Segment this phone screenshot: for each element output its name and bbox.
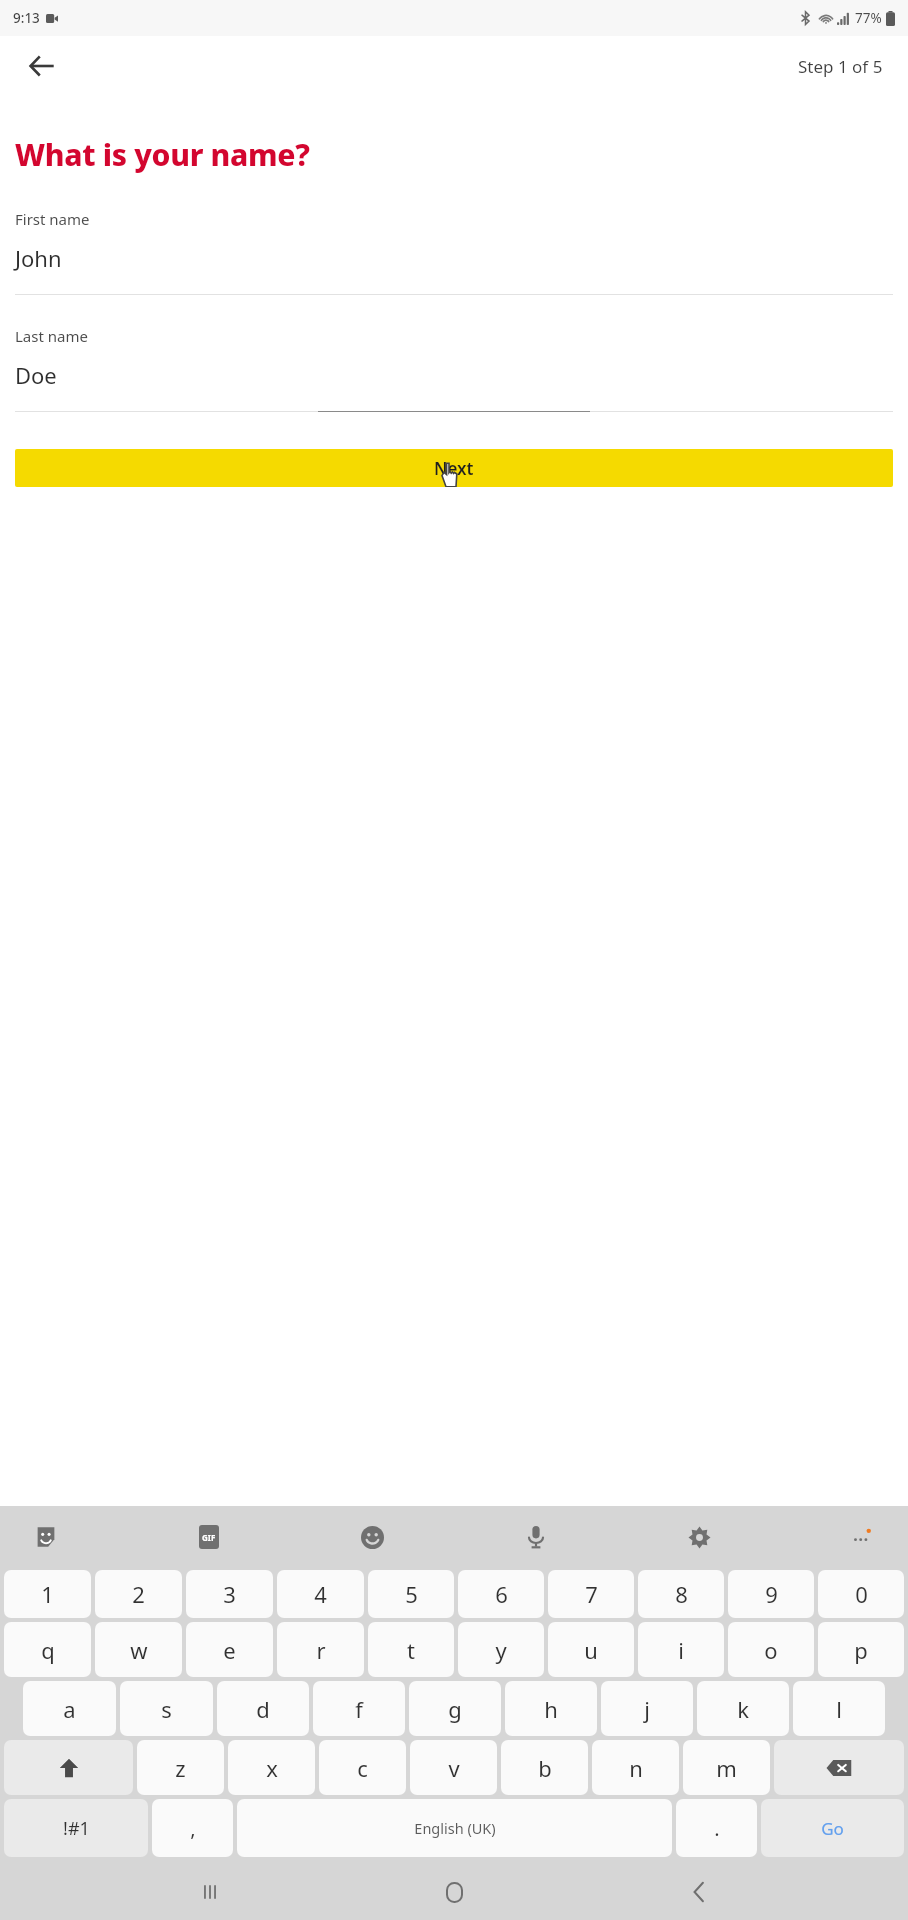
staticText: z <box>175 1753 186 1783</box>
staticText: Next <box>434 457 474 480</box>
button[interactable]: Next <box>15 449 893 487</box>
staticText: w <box>130 1635 148 1665</box>
button[interactable]: m <box>683 1740 770 1795</box>
staticText: u <box>584 1635 598 1665</box>
button[interactable]: English (UK) <box>237 1799 672 1857</box>
button[interactable]: f <box>313 1681 405 1736</box>
button[interactable]: z <box>137 1740 224 1795</box>
staticText: p <box>854 1635 868 1665</box>
staticText: Last name <box>15 326 88 346</box>
button[interactable]: d <box>217 1681 309 1736</box>
staticText: o <box>764 1635 778 1665</box>
button[interactable]: 3 <box>186 1570 273 1618</box>
button[interactable]: Last name <box>15 326 893 412</box>
button[interactable]: j <box>601 1681 693 1736</box>
button[interactable]: Back <box>664 1867 734 1917</box>
staticText: . <box>714 1815 720 1842</box>
staticText: 6 <box>495 1579 508 1609</box>
button[interactable]: c <box>319 1740 406 1795</box>
staticText: 0 <box>855 1579 868 1609</box>
button[interactable]: Recents <box>175 1867 245 1917</box>
button[interactable]: Backspace <box>774 1740 904 1795</box>
staticText: k <box>737 1694 749 1724</box>
staticText: b <box>538 1753 552 1783</box>
button[interactable]: 6 <box>458 1570 544 1618</box>
staticText: Doe <box>15 360 57 390</box>
button[interactable]: q <box>4 1622 91 1677</box>
staticText: Step 1 of 5 <box>798 55 883 78</box>
button[interactable]: p <box>818 1622 904 1677</box>
staticText: f <box>355 1694 363 1724</box>
staticText: r <box>316 1635 326 1665</box>
staticText: h <box>544 1694 558 1724</box>
staticText: d <box>256 1694 270 1724</box>
button[interactable]: 2 <box>95 1570 182 1618</box>
staticText: 77% <box>855 9 882 27</box>
button[interactable]: Go <box>761 1799 904 1857</box>
button[interactable]: 8 <box>638 1570 724 1618</box>
button[interactable]: More options <box>838 1513 886 1561</box>
button[interactable]: i <box>638 1622 724 1677</box>
staticText: English (UK) <box>414 1818 496 1838</box>
button[interactable]: w <box>95 1622 182 1677</box>
staticText: j <box>644 1694 650 1724</box>
staticText: y <box>495 1635 507 1665</box>
staticText: John <box>15 243 62 273</box>
staticText: , <box>190 1815 196 1842</box>
button[interactable]: 9 <box>728 1570 814 1618</box>
staticText: 1 <box>41 1579 54 1609</box>
button[interactable]: b <box>501 1740 588 1795</box>
button[interactable]: Back <box>14 38 70 94</box>
button[interactable]: Shift <box>4 1740 133 1795</box>
staticText: x <box>266 1753 278 1783</box>
staticText: n <box>629 1753 643 1783</box>
staticText: g <box>448 1694 462 1724</box>
button[interactable]: First name <box>15 209 893 295</box>
button[interactable]: v <box>410 1740 497 1795</box>
staticText: 8 <box>675 1579 688 1609</box>
staticText: GIF <box>202 1532 216 1543</box>
staticText: 7 <box>585 1579 598 1609</box>
button[interactable]: t <box>368 1622 454 1677</box>
button[interactable]: 7 <box>548 1570 634 1618</box>
staticText: m <box>716 1753 737 1783</box>
button[interactable]: Emoji <box>348 1513 396 1561</box>
button[interactable]: s <box>120 1681 213 1736</box>
button[interactable]: e <box>186 1622 273 1677</box>
button[interactable]: !#1 <box>4 1799 148 1857</box>
staticText: 2 <box>132 1579 145 1609</box>
button[interactable]: x <box>228 1740 315 1795</box>
staticText: q <box>41 1635 55 1665</box>
button[interactable]: 1 <box>4 1570 91 1618</box>
staticText: c <box>357 1753 368 1783</box>
button[interactable]: u <box>548 1622 634 1677</box>
button[interactable]: k <box>697 1681 789 1736</box>
button[interactable]: o <box>728 1622 814 1677</box>
button[interactable]: , <box>152 1799 233 1857</box>
staticText: t <box>407 1635 415 1665</box>
staticText: l <box>836 1694 842 1724</box>
button[interactable]: Keyboard settings <box>675 1513 723 1561</box>
button[interactable]: 5 <box>368 1570 454 1618</box>
button[interactable]: y <box>458 1622 544 1677</box>
button[interactable]: g <box>409 1681 501 1736</box>
button[interactable]: h <box>505 1681 597 1736</box>
staticText: 3 <box>223 1579 236 1609</box>
button[interactable]: . <box>676 1799 757 1857</box>
button[interactable]: a <box>23 1681 116 1736</box>
staticText: First name <box>15 209 90 229</box>
staticText: Go <box>821 1817 844 1840</box>
button[interactable]: Voice input <box>512 1513 560 1561</box>
button[interactable]: 0 <box>818 1570 904 1618</box>
button[interactable]: n <box>592 1740 679 1795</box>
button[interactable]: Stickers <box>22 1513 70 1561</box>
button[interactable]: Home <box>419 1867 489 1917</box>
staticText: 9 <box>765 1579 778 1609</box>
button[interactable]: l <box>793 1681 885 1736</box>
staticText: 9:13 <box>13 9 40 27</box>
button[interactable]: r <box>277 1622 364 1677</box>
button[interactable]: GIF <box>185 1513 233 1561</box>
staticText: What is your name? <box>15 134 310 175</box>
button[interactable]: 4 <box>277 1570 364 1618</box>
staticText: 5 <box>405 1579 418 1609</box>
